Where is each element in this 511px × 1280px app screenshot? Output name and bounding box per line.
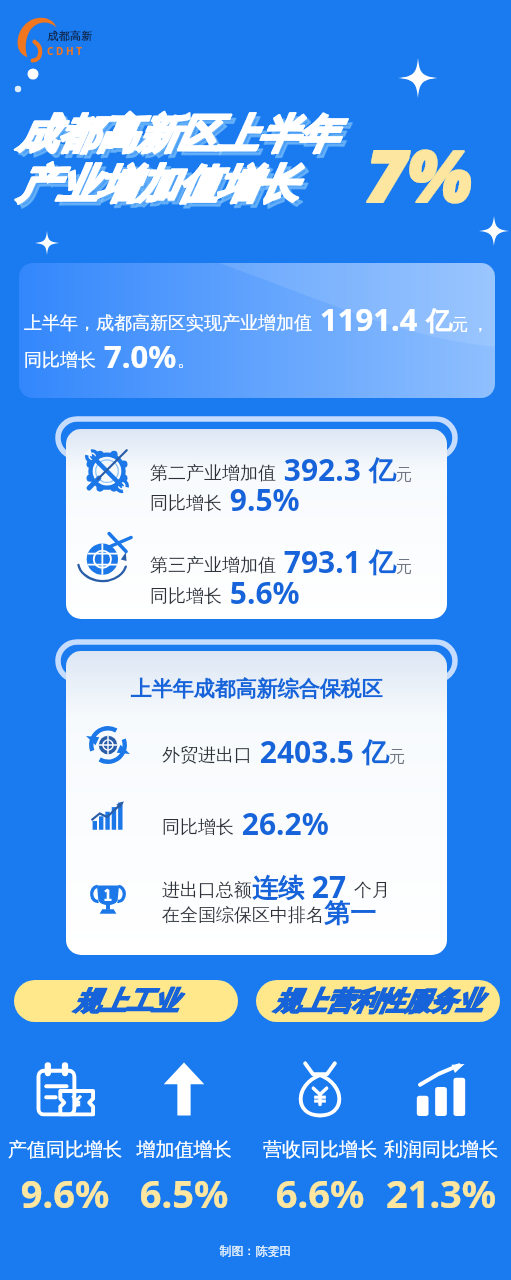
staticText: 392.3 [276, 449, 369, 490]
staticText: 亿 [426, 305, 452, 338]
staticText: 。 [177, 349, 195, 372]
staticText: 元 [396, 465, 412, 485]
staticText: 规上营利性服务业 [274, 985, 482, 1018]
staticText: 第一 [324, 897, 376, 930]
button[interactable]: 规上工业 [14, 980, 238, 1022]
staticText: 在全国综保区中排名 [162, 904, 324, 927]
staticText: 产业增加值增长 [21, 163, 301, 213]
staticText: 规上营利性服务业 [274, 985, 482, 1018]
staticText: 同比增长 [162, 816, 234, 839]
staticText: 营收同比增长 [256, 1138, 384, 1162]
button[interactable]: 规上营利性服务业 [256, 980, 500, 1022]
staticText: 同比增长 [150, 585, 222, 608]
staticText: 亿 [369, 454, 396, 488]
staticText: 9.6% [1, 1167, 129, 1219]
staticText: 9.5% [222, 479, 300, 520]
staticText: 2403.5 [252, 731, 362, 772]
staticText: 21.3% [377, 1167, 505, 1219]
staticText: 利润同比增长 [377, 1138, 505, 1162]
staticText: 同比增长 [150, 492, 222, 515]
staticText: 进出口总额 [162, 879, 252, 902]
staticText: 6.6% [256, 1167, 384, 1219]
staticText: 上半年成都高新综合保税区 [66, 676, 447, 702]
staticText: 7% [366, 127, 472, 222]
staticText: 产业增加值增长 [21, 163, 301, 213]
staticText: 7% [366, 127, 472, 222]
staticText: 亿 [369, 546, 396, 580]
staticText: 同比增长 [24, 349, 96, 372]
staticText: 制图：陈雯田 [0, 1243, 511, 1258]
staticText: 1191.4 [312, 298, 426, 340]
staticText: 第二产业增加值 [150, 462, 276, 485]
staticText: 产业增加值增长 [17, 159, 297, 209]
staticText: 7.0% [96, 335, 177, 377]
staticText: 连续 [252, 872, 304, 905]
staticText: 6.5% [120, 1167, 248, 1219]
staticText: 外贸进出口 [162, 744, 252, 767]
staticText: 27 [304, 866, 354, 907]
staticText: 26.2% [234, 803, 329, 844]
staticText: 第三产业增加值 [150, 554, 276, 577]
staticText: 个月 [354, 879, 390, 902]
staticText: 成都高新区上半年 [21, 113, 341, 163]
staticText: 成都高新 [47, 29, 93, 43]
staticText: 成都高新区上半年 [21, 113, 341, 163]
staticText: 元 [396, 557, 412, 577]
staticText: 成都高新区上半年 [17, 109, 337, 159]
staticText: 793.1 [276, 541, 369, 582]
staticText: 5.6% [222, 572, 300, 613]
staticText: 产值同比增长 [1, 1138, 129, 1162]
staticText: 规上工业 [74, 985, 178, 1018]
staticText: 上半年，成都高新区实现产业增加值 [24, 312, 312, 335]
staticText: 亿 [362, 736, 389, 770]
staticText: CDHT [47, 44, 85, 58]
staticText: 元 [389, 747, 405, 767]
staticText: 成都高新区上半年 [17, 109, 337, 159]
staticText: 产业增加值增长 [17, 159, 297, 209]
staticText: 元 ， [452, 313, 489, 335]
staticText: 增加值增长 [120, 1138, 248, 1162]
staticText: 规上工业 [74, 985, 178, 1018]
